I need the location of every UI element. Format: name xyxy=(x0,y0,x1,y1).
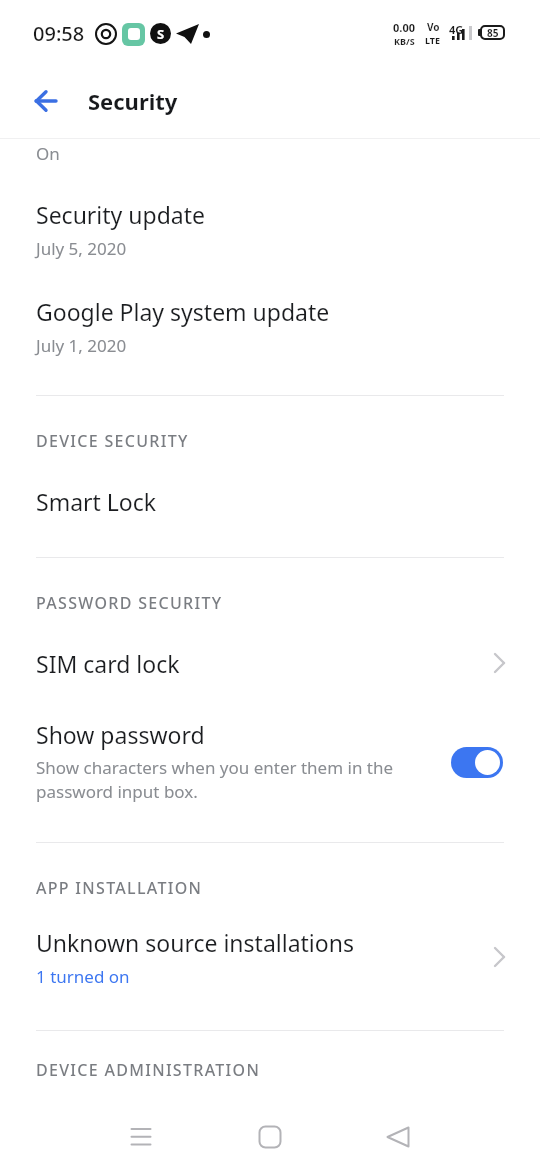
button[interactable] xyxy=(22,77,70,125)
button[interactable] xyxy=(109,1105,173,1169)
staticText: 4G xyxy=(449,22,464,37)
staticText: 85 xyxy=(487,26,499,40)
staticText: July 1, 2020 xyxy=(36,334,127,357)
staticText: 0.00 xyxy=(393,20,415,35)
button[interactable] xyxy=(238,1105,302,1169)
staticText: Show characters when you enter them in t… xyxy=(36,756,394,803)
staticText: Vo xyxy=(427,20,440,34)
staticText: On xyxy=(36,142,60,165)
staticText: July 5, 2020 xyxy=(36,237,127,260)
staticText: S xyxy=(157,25,165,43)
staticText: 1 turned on xyxy=(36,965,130,988)
staticText: KB/S xyxy=(394,35,415,47)
staticText: PASSWORD SECURITY xyxy=(36,592,223,614)
staticText: APP INSTALLATION xyxy=(36,877,203,899)
button[interactable] xyxy=(366,1105,430,1169)
button[interactable]: Smart Lock xyxy=(0,475,540,527)
staticText: Security xyxy=(88,86,178,116)
staticText: 09:58 xyxy=(33,20,85,47)
staticText: Google Play system update xyxy=(36,296,330,327)
staticText: Show password xyxy=(36,719,205,750)
staticText: SIM card lock xyxy=(36,648,180,679)
staticText: DEVICE SECURITY xyxy=(36,430,189,452)
staticText: LTE xyxy=(425,34,441,46)
button[interactable]: On xyxy=(0,139,540,167)
button[interactable]: Security update xyxy=(0,196,540,272)
staticText: DEVICE ADMINISTRATION xyxy=(36,1059,261,1081)
button[interactable]: Google Play system update xyxy=(0,293,540,369)
staticText: Smart Lock xyxy=(36,486,157,517)
button[interactable]: Show password xyxy=(0,712,540,812)
button[interactable]: SIM card lock xyxy=(0,637,540,689)
button[interactable]: Unknown source installations xyxy=(0,918,540,995)
staticText: Security update xyxy=(36,199,205,230)
staticText: Unknown source installations xyxy=(36,927,354,958)
